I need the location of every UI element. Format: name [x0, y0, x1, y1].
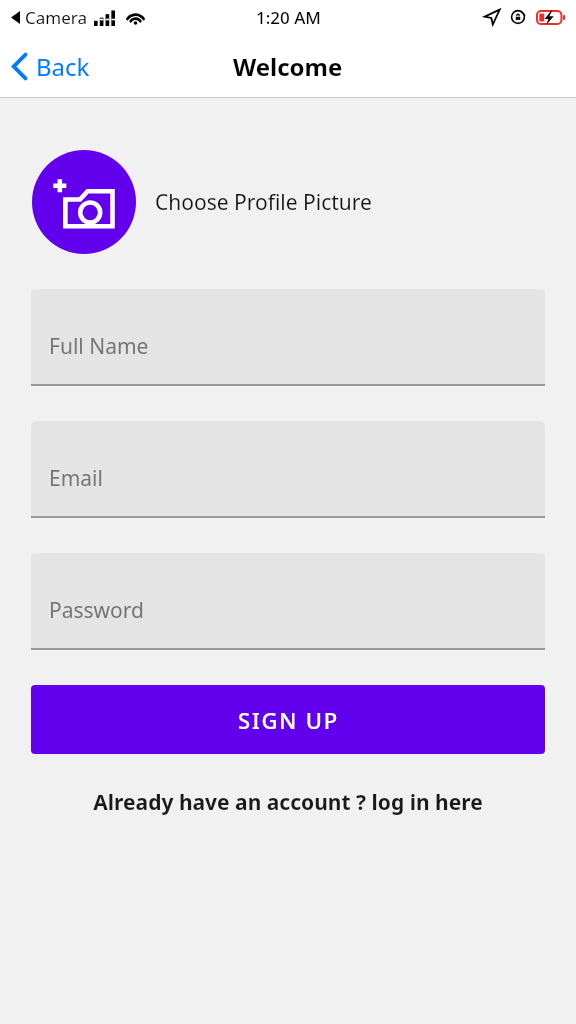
button[interactable]: Password [31, 553, 545, 650]
staticText: Already have an account ? log in here [0, 788, 576, 817]
staticText: Email [49, 464, 103, 493]
staticText: Welcome [233, 50, 343, 83]
button[interactable]: Full Name [31, 289, 545, 386]
other: Choose profile picture [32, 150, 136, 254]
button[interactable]: Choose profile picture [0, 144, 576, 260]
staticText: Camera [25, 6, 87, 29]
button[interactable]: Already have an account ? log in here [0, 780, 576, 825]
staticText: Full Name [49, 332, 149, 361]
button[interactable]: Back [0, 42, 104, 91]
staticText: 1:20 AM [256, 6, 321, 29]
staticText: Password [49, 596, 144, 625]
staticText: SIGN UP [238, 705, 339, 735]
staticText: Choose Profile Picture [155, 188, 372, 217]
button[interactable]: SIGN UP [31, 685, 545, 754]
staticText: Back [36, 50, 90, 83]
button[interactable]: Email [31, 421, 545, 518]
